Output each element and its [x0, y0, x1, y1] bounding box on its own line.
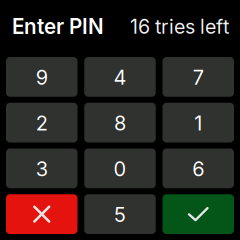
button[interactable]: 7	[162, 57, 234, 97]
button[interactable]: Cancel	[6, 194, 77, 234]
button[interactable]: 2	[6, 103, 77, 143]
staticText: 0	[113, 157, 126, 181]
button[interactable]: 6	[162, 148, 234, 188]
staticText: 9	[36, 65, 48, 89]
staticText: 2	[36, 111, 48, 135]
staticText: 6	[192, 157, 204, 181]
button[interactable]: 3	[6, 148, 77, 188]
staticText: 3	[36, 157, 48, 181]
button[interactable]: 9	[6, 57, 77, 97]
button[interactable]: Confirm	[162, 194, 234, 234]
staticText: 1	[194, 111, 202, 135]
staticText: Enter PIN	[12, 14, 104, 39]
button[interactable]: 5	[84, 194, 156, 234]
button[interactable]: 0	[84, 148, 156, 188]
button[interactable]: 8	[84, 103, 156, 143]
staticText: 4	[113, 65, 126, 89]
staticText: 7	[193, 65, 204, 89]
staticText: 8	[114, 111, 126, 135]
button[interactable]: 1	[162, 103, 234, 143]
staticText: 5	[114, 202, 126, 227]
staticText: 16 tries left	[130, 15, 229, 38]
button[interactable]: 4	[84, 57, 156, 97]
